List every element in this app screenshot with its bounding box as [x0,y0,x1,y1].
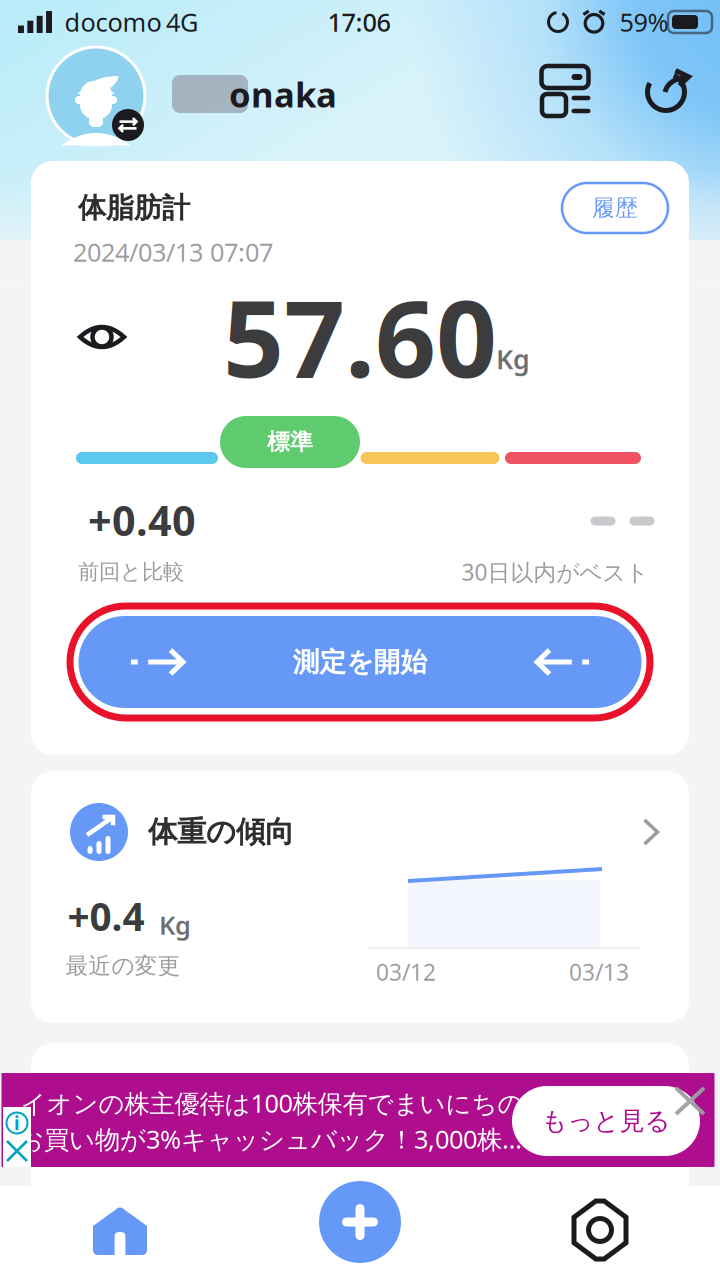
staticText: 17:06 [327,5,390,39]
staticText: お買い物が3%キャッシュバック！3,000株… [18,1122,522,1156]
staticText: docomo [64,5,161,39]
button[interactable]: Home [50,1183,190,1277]
staticText: 最近の変更 [65,952,180,980]
staticText: Kg [159,908,191,942]
staticText: 4G [166,5,198,39]
staticText: 前回と比較 [78,559,184,585]
staticText: 30日以内がベスト [461,557,648,587]
button[interactable]: Ad information [5,1110,29,1136]
button[interactable]: Share [636,62,696,122]
staticText: 測定を開始 [292,646,427,678]
staticText: +0.40 [88,493,196,547]
staticText: 03/13 [569,957,629,987]
button[interactable]: Profile [42,44,150,148]
staticText: 体脂肪計 [78,191,190,225]
staticText: Kg [496,341,530,377]
button[interactable]: もっと見る [512,1086,700,1156]
button[interactable]: 測定を開始 [70,606,650,718]
staticText: 体重の傾向 [148,814,294,850]
button[interactable]: Toggle value [72,314,132,360]
staticText: i [14,1111,20,1135]
staticText: 2024/03/13 07:07 [73,235,273,269]
staticText: 標準 [267,428,313,456]
staticText: イオンの株主優待は100株保有でまいにちの [20,1086,523,1120]
staticText: 59% [619,5,668,39]
button[interactable]: Settings [530,1183,670,1277]
staticText: +0.4 [67,890,144,942]
staticText: 57.60 [223,265,497,407]
staticText: 履歴 [592,194,638,222]
staticText: もっと見る [541,1105,670,1136]
button[interactable]: 体重の傾向 [31,771,689,1023]
staticText: onaka [229,71,337,117]
button[interactable]: 履歴 [562,183,668,233]
button[interactable]: Dashboard [540,64,600,124]
staticText: 03/12 [376,957,436,987]
button[interactable]: Close ad [5,1138,29,1164]
button[interactable]: Add measurement [308,1170,412,1274]
